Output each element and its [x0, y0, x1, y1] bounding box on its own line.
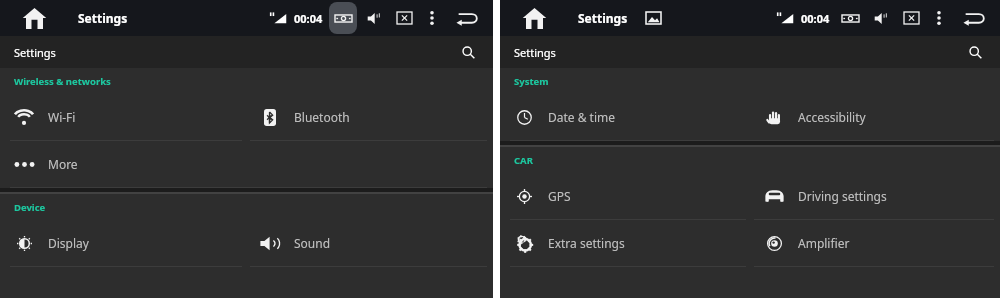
staticText: Date & time	[548, 109, 616, 125]
staticText: 00:04	[801, 11, 830, 26]
button[interactable]: Camera	[836, 2, 864, 34]
staticText: Accessibility	[798, 109, 866, 125]
button[interactable]: Camera	[329, 2, 357, 34]
button[interactable]: Back	[958, 2, 990, 34]
staticText: Amplifier	[798, 235, 850, 251]
staticText: Wireless & networks	[14, 75, 111, 88]
button[interactable]: Home	[16, 0, 52, 36]
button[interactable]: Extra settings	[500, 220, 750, 266]
button[interactable]: Display	[0, 220, 246, 266]
staticText: Extra settings	[548, 235, 625, 251]
button[interactable]: Close display	[391, 5, 417, 31]
button[interactable]: Picture	[640, 5, 666, 31]
button[interactable]: More	[0, 141, 246, 187]
button[interactable]: Accessibility	[750, 94, 1000, 140]
button[interactable]: More options	[421, 7, 443, 29]
staticText: GPS	[548, 188, 571, 204]
button[interactable]: GPS	[500, 173, 750, 219]
button[interactable]: More options	[928, 7, 950, 29]
staticText: Settings	[14, 45, 56, 60]
staticText: CAR	[514, 154, 533, 167]
staticText: Sound	[294, 235, 331, 251]
staticText: Wi-Fi	[48, 109, 76, 125]
staticText: Settings	[78, 10, 128, 26]
button[interactable]: Sound	[246, 220, 493, 266]
staticText: Settings	[578, 10, 628, 26]
button[interactable]: Search	[455, 39, 481, 65]
button[interactable]: Date & time	[500, 94, 750, 140]
button[interactable]: Driving settings	[750, 173, 1000, 219]
button[interactable]: Wi-Fi	[0, 94, 246, 140]
staticText: System	[514, 75, 549, 88]
button[interactable]: Bluetooth	[246, 94, 493, 140]
staticText: 00:04	[294, 11, 323, 26]
button[interactable]: Home	[516, 0, 552, 36]
button[interactable]: Close display	[898, 5, 924, 31]
button[interactable]: Search	[962, 39, 988, 65]
staticText: Driving settings	[798, 188, 887, 204]
staticText: Display	[48, 235, 89, 251]
button[interactable]: Volume	[868, 5, 894, 31]
staticText: Settings	[514, 45, 556, 60]
staticText: More	[48, 156, 78, 172]
button[interactable]: Volume	[361, 5, 387, 31]
staticText: Device	[14, 201, 46, 214]
button[interactable]: Back	[451, 2, 483, 34]
staticText: Bluetooth	[294, 109, 350, 125]
button[interactable]: Amplifier	[750, 220, 1000, 266]
